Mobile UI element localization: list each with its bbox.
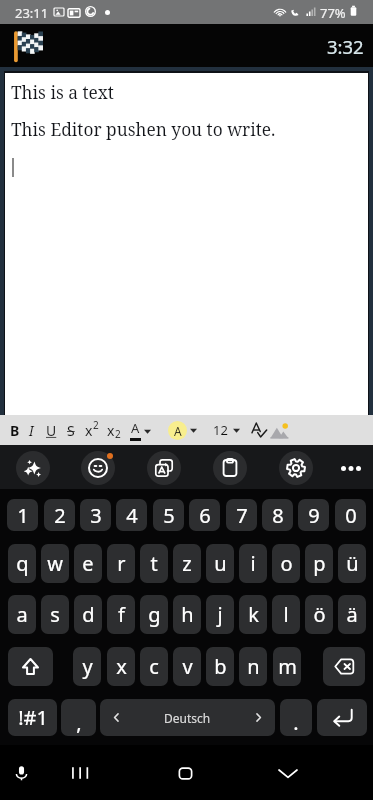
button[interactable]: ü — [338, 544, 366, 583]
button[interactable]: Shift — [8, 647, 53, 686]
button[interactable]: k — [239, 595, 267, 634]
button[interactable]: !#1 — [8, 699, 57, 736]
button[interactable]: x — [107, 647, 135, 686]
staticText: e — [82, 550, 94, 577]
button[interactable]: u — [206, 544, 234, 583]
button[interactable]: Recents — [63, 756, 97, 790]
button[interactable]: f — [107, 595, 135, 634]
button[interactable]: h — [173, 595, 201, 634]
staticText: 5 — [163, 502, 175, 529]
button[interactable]: c — [140, 647, 168, 686]
button[interactable]: 8 — [262, 499, 293, 531]
button[interactable]: z — [173, 544, 201, 583]
staticText: B — [10, 421, 20, 440]
staticText: f — [118, 601, 125, 628]
staticText: s — [50, 601, 60, 628]
staticText: v — [182, 653, 193, 680]
button[interactable]: More options — [334, 451, 368, 485]
button[interactable]: B — [6, 415, 24, 445]
button[interactable]: a — [8, 595, 36, 634]
button[interactable]: 7 — [226, 499, 257, 531]
staticText: x — [116, 653, 127, 680]
button[interactable]: s — [41, 595, 69, 634]
button[interactable]: l — [272, 595, 300, 634]
staticText: !#1 — [18, 704, 48, 731]
staticText: 2 — [93, 418, 99, 432]
button[interactable]: Home — [168, 756, 202, 790]
button[interactable]: 6 — [189, 499, 220, 531]
button[interactable]: p — [305, 544, 333, 583]
button[interactable]: j — [206, 595, 234, 634]
staticText: A — [174, 423, 182, 439]
button[interactable]: d — [74, 595, 102, 634]
staticText: o — [280, 550, 293, 577]
staticText: b — [214, 653, 227, 680]
staticText: 9 — [308, 502, 320, 529]
button[interactable]: 2 — [44, 499, 75, 531]
button[interactable]: . — [280, 699, 312, 736]
button[interactable]: Deutsch — [100, 699, 275, 736]
staticText: h — [181, 601, 194, 628]
button[interactable]: I — [22, 415, 40, 445]
staticText: y — [82, 653, 93, 680]
button[interactable]: 1 — [7, 499, 38, 531]
button[interactable]: S — [62, 415, 80, 445]
button[interactable]: v — [173, 647, 201, 686]
button[interactable]: Translate — [147, 451, 181, 485]
button[interactable]: q — [8, 544, 36, 583]
button[interactable]: Font size — [213, 415, 240, 445]
staticText: A — [131, 419, 140, 437]
staticText: , — [76, 709, 82, 736]
button[interactable]: n — [239, 647, 267, 686]
staticText: g — [148, 601, 161, 628]
button[interactable]: t — [140, 544, 168, 583]
button[interactable]: Hide keyboard — [271, 756, 305, 790]
button[interactable]: x — [107, 415, 121, 445]
button[interactable]: ä — [338, 595, 366, 634]
staticText: l — [283, 601, 289, 628]
staticText: 2 — [54, 502, 66, 529]
staticText: Deutsch — [164, 710, 211, 726]
staticText: x — [85, 421, 93, 440]
staticText: d — [82, 601, 95, 628]
staticText: 12 — [213, 421, 228, 439]
staticText: 6 — [199, 502, 211, 529]
staticText: r — [117, 550, 126, 577]
button[interactable]: Clear formatting — [251, 422, 267, 438]
button[interactable]: , — [61, 699, 96, 736]
staticText: j — [217, 601, 223, 628]
button[interactable]: Emoji — [81, 451, 115, 485]
button[interactable]: Assist — [16, 451, 50, 485]
button[interactable]: Text color — [130, 415, 151, 445]
button[interactable]: U — [42, 415, 60, 445]
button[interactable]: m — [273, 647, 301, 686]
staticText: k — [248, 601, 259, 628]
button[interactable]: 5 — [153, 499, 184, 531]
button[interactable]: 3 — [80, 499, 111, 531]
button[interactable]: 9 — [298, 499, 329, 531]
button[interactable]: r — [107, 544, 135, 583]
staticText: 0 — [345, 502, 357, 529]
button[interactable]: e — [74, 544, 102, 583]
staticText: 1 — [17, 502, 29, 529]
button[interactable]: Insert image — [270, 422, 289, 441]
button[interactable]: Enter — [317, 699, 367, 736]
button[interactable]: ö — [305, 595, 333, 634]
button[interactable]: Highlight color — [168, 415, 197, 445]
button[interactable]: Voice input — [4, 756, 38, 790]
button[interactable]: x — [85, 415, 99, 445]
button[interactable]: w — [41, 544, 69, 583]
button[interactable]: o — [272, 544, 300, 583]
button[interactable]: Settings — [279, 451, 313, 485]
button[interactable]: i — [239, 544, 267, 583]
button[interactable]: 0 — [335, 499, 366, 531]
button[interactable]: y — [73, 647, 101, 686]
button[interactable]: b — [206, 647, 234, 686]
staticText: z — [182, 550, 192, 577]
staticText: ü — [346, 550, 359, 577]
button[interactable]: 4 — [116, 499, 147, 531]
button[interactable]: g — [140, 595, 168, 634]
button[interactable]: Backspace — [323, 647, 365, 686]
staticText: 7 — [236, 502, 248, 529]
button[interactable]: Clipboard — [213, 451, 247, 485]
